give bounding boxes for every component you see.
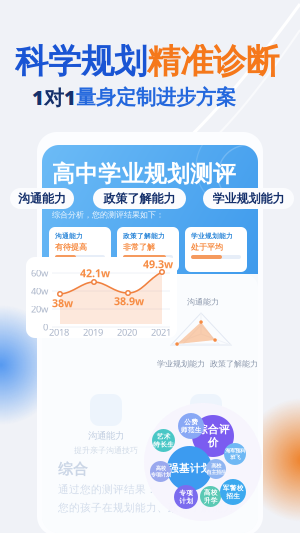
staticText: 科学规划 — [15, 41, 147, 82]
staticText: 政策了解能力 — [123, 232, 165, 240]
staticText: 38.9w — [114, 294, 144, 308]
staticText: 1对1 — [32, 84, 76, 111]
staticText: 综合分析，您的测评结果如下： — [52, 210, 164, 220]
button[interactable]: 政策了解能力 — [93, 188, 186, 209]
staticText: 沟通能力 — [88, 430, 124, 441]
staticText: 高校 自主招生 — [206, 462, 226, 475]
staticText: 通过您的测评结果： — [58, 483, 157, 496]
button[interactable]: 学业规划能力 — [203, 188, 294, 209]
staticText: 高中学业规划测评 — [52, 160, 236, 188]
button[interactable]: 沟通能力 — [10, 188, 74, 209]
staticText: 艺术 特长生 — [153, 432, 174, 449]
staticText: 42.1w — [80, 266, 110, 280]
staticText: 海军预科 班飞 — [225, 447, 245, 460]
staticText: 2018 — [49, 326, 69, 338]
staticText: 沟通能力 — [18, 191, 66, 206]
staticText: 2020 — [117, 326, 137, 338]
staticText: 提升亲子沟通技巧 — [74, 445, 138, 455]
staticText: 公费 师范生 — [180, 418, 201, 434]
staticText: 您的孩子在规划能力、政策了解能力 — [58, 501, 234, 514]
staticText: 60w — [31, 267, 48, 279]
staticText: 有待提高 — [55, 242, 87, 252]
staticText: 学业规划能力 — [191, 232, 233, 240]
staticText: 综合评价 — [196, 423, 229, 449]
staticText: 学业规划能力 — [157, 359, 205, 369]
staticText: 高校 专项计划 — [150, 465, 170, 478]
staticText: 20w — [31, 303, 48, 315]
staticText: 掌握高考政策 — [182, 445, 230, 455]
staticText: 综合 — [58, 460, 88, 478]
staticText: 38w — [52, 296, 73, 310]
staticText: 沟通能力 — [187, 297, 219, 307]
staticText: 政策了解能力 — [210, 359, 258, 369]
staticText: 学业规划能力 — [212, 191, 284, 206]
staticText: 2019 — [83, 326, 103, 338]
staticText: 量身定制进步方案 — [76, 85, 236, 110]
staticText: 40w — [31, 285, 48, 297]
staticText: 专项 计划 — [179, 489, 193, 505]
staticText: 军警校 招生 — [222, 484, 243, 500]
staticText: 49.3w — [143, 257, 173, 271]
staticText: 政策了解 — [188, 430, 224, 441]
staticText: 沟通能力 — [55, 232, 83, 240]
staticText: 政策了解能力 — [103, 191, 175, 206]
staticText: 高校 升学 — [203, 488, 217, 505]
staticText: 0 — [43, 321, 48, 333]
staticText: 非常了解 — [123, 242, 155, 252]
staticText: 处于平均 — [191, 242, 223, 252]
staticText: 精准诊断 — [147, 41, 279, 82]
staticText: 强基计划 — [167, 462, 211, 475]
staticText: 2021 — [151, 326, 171, 338]
